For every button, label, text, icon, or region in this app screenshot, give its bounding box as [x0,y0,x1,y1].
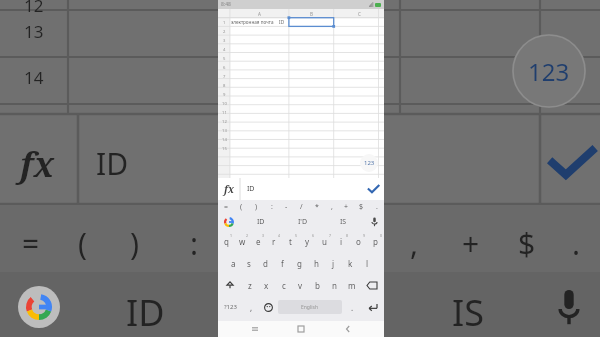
button[interactable]: = [218,200,234,213]
staticText: 7 [223,74,226,80]
staticText: f [281,258,284,269]
staticText: = [224,202,229,212]
button[interactable]: ID [240,213,282,230]
staticText: . [572,223,581,264]
button[interactable]: t [282,230,299,252]
staticText: 4 [223,47,226,53]
button[interactable]: Back [338,321,358,337]
button[interactable]: ID [241,178,362,200]
staticText: , [250,302,253,313]
button[interactable]: z [241,274,258,296]
staticText: : [271,202,273,212]
staticText: y [305,236,310,247]
button[interactable]: h [308,252,325,274]
staticText: n [332,280,337,291]
other: Number format [512,34,586,108]
button[interactable]: e [250,230,266,252]
staticText: $ [518,223,536,264]
button[interactable]: j [325,252,342,274]
button[interactable]: ( [234,200,249,213]
button[interactable]: g [291,252,308,274]
button[interactable]: / [294,200,309,213]
button[interactable]: w [234,230,250,252]
button[interactable]: I'D [282,213,323,230]
staticText: o [356,236,361,247]
staticText: 9 [363,233,366,238]
staticText: fx [20,141,55,187]
staticText: r [272,236,276,247]
staticText: 123 [364,159,375,167]
button[interactable]: l [359,252,376,274]
button[interactable]: i [333,230,350,252]
staticText: 1 [223,20,226,26]
staticText: = [22,223,40,264]
staticText: 7 [329,233,332,238]
button[interactable]: Enter [360,296,384,318]
button[interactable]: $ [354,200,369,213]
button[interactable]: c [275,274,292,296]
button[interactable]: - [279,200,294,213]
staticText: k [348,258,353,269]
button[interactable]: y [299,230,316,252]
staticText: электронная почта [231,19,274,25]
staticText: ?123 [224,303,237,311]
staticText: ID [257,217,265,227]
button[interactable]: Emoji [260,296,276,318]
button[interactable]: d [257,252,274,274]
button[interactable]: n [326,274,343,296]
staticText: 6 [312,233,315,238]
staticText: j [332,258,335,269]
staticText: c [282,280,286,291]
staticText: + [462,223,480,264]
button[interactable]: f [274,252,291,274]
staticText: 15 [24,113,44,136]
button[interactable]: , [243,296,260,318]
staticText: 8 [346,233,349,238]
button[interactable]: v [292,274,309,296]
button[interactable]: : [264,200,279,213]
button[interactable]: Voice input [364,213,384,230]
button[interactable]: u [316,230,333,252]
button[interactable]: Backspace [360,274,384,296]
button[interactable]: a [225,252,241,274]
button[interactable]: Google [218,213,240,230]
button[interactable]: + [339,200,354,213]
staticText: a [231,258,236,269]
other: Google [18,286,60,328]
button[interactable]: Accept [362,178,384,200]
button[interactable]: * [309,200,324,213]
button[interactable]: x [258,274,275,296]
button[interactable]: , [324,200,339,213]
button[interactable]: Functions [218,178,240,200]
button[interactable]: IS [323,213,364,230]
button[interactable]: ?123 [218,296,243,318]
button[interactable]: k [342,252,359,274]
button[interactable]: . [369,200,384,213]
button[interactable]: o [350,230,367,252]
button[interactable]: Home [291,321,311,337]
staticText: 4 [278,233,281,238]
staticText: z [248,280,252,291]
button[interactable]: p [367,230,384,252]
staticText: p [373,236,378,247]
button[interactable]: . [344,296,360,318]
staticText: , [410,223,419,264]
staticText: 12 [222,119,227,125]
button[interactable]: Shift [218,274,241,296]
staticText: 6 [223,65,226,71]
button[interactable]: Recents [245,321,265,337]
staticText: 13 [222,128,227,134]
staticText: A [258,11,261,17]
button[interactable]: r [266,230,282,252]
staticText: 8 [223,83,226,89]
button[interactable]: Number format [360,154,378,172]
button[interactable]: q [218,230,234,252]
button[interactable]: ) [249,200,264,213]
button[interactable]: m [343,274,360,296]
button[interactable]: s [241,252,257,274]
staticText: 8:48 [221,1,231,8]
staticText: d [263,258,268,269]
button[interactable]: English [278,300,342,314]
other: Voice input [556,290,582,328]
button[interactable]: b [309,274,326,296]
